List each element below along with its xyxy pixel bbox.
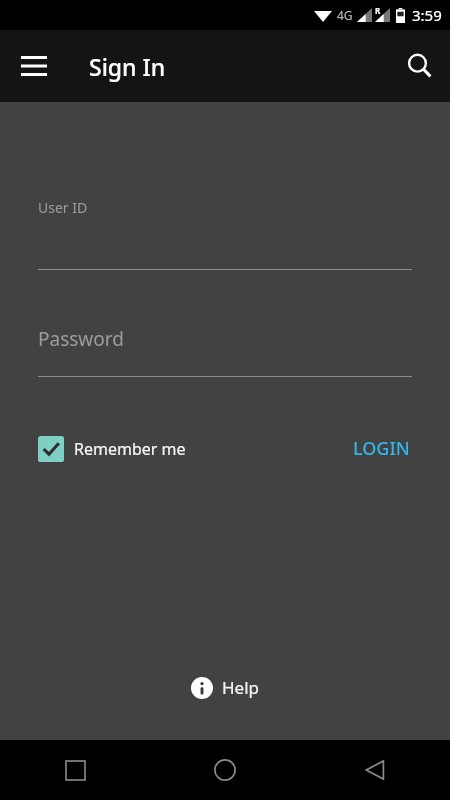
button[interactable]: Back (300, 740, 450, 800)
staticText: 4G (337, 7, 353, 23)
staticText: R (375, 5, 381, 16)
staticText: LOGIN (353, 436, 410, 461)
staticText: Help (222, 676, 260, 699)
button[interactable]: Home (150, 740, 300, 800)
staticText: Password (38, 326, 124, 352)
staticText: User ID (38, 198, 88, 217)
button[interactable]: Remember me (38, 436, 192, 462)
button[interactable]: LOGIN (347, 430, 416, 467)
button[interactable]: Open navigation menu (10, 42, 58, 90)
button[interactable]: Help (181, 670, 270, 705)
button[interactable]: Recent apps (0, 740, 150, 800)
staticText: 3:59 (412, 5, 442, 25)
button[interactable]: Search (396, 42, 444, 90)
staticText: Sign In (89, 51, 166, 82)
staticText: Remember me (74, 438, 186, 460)
